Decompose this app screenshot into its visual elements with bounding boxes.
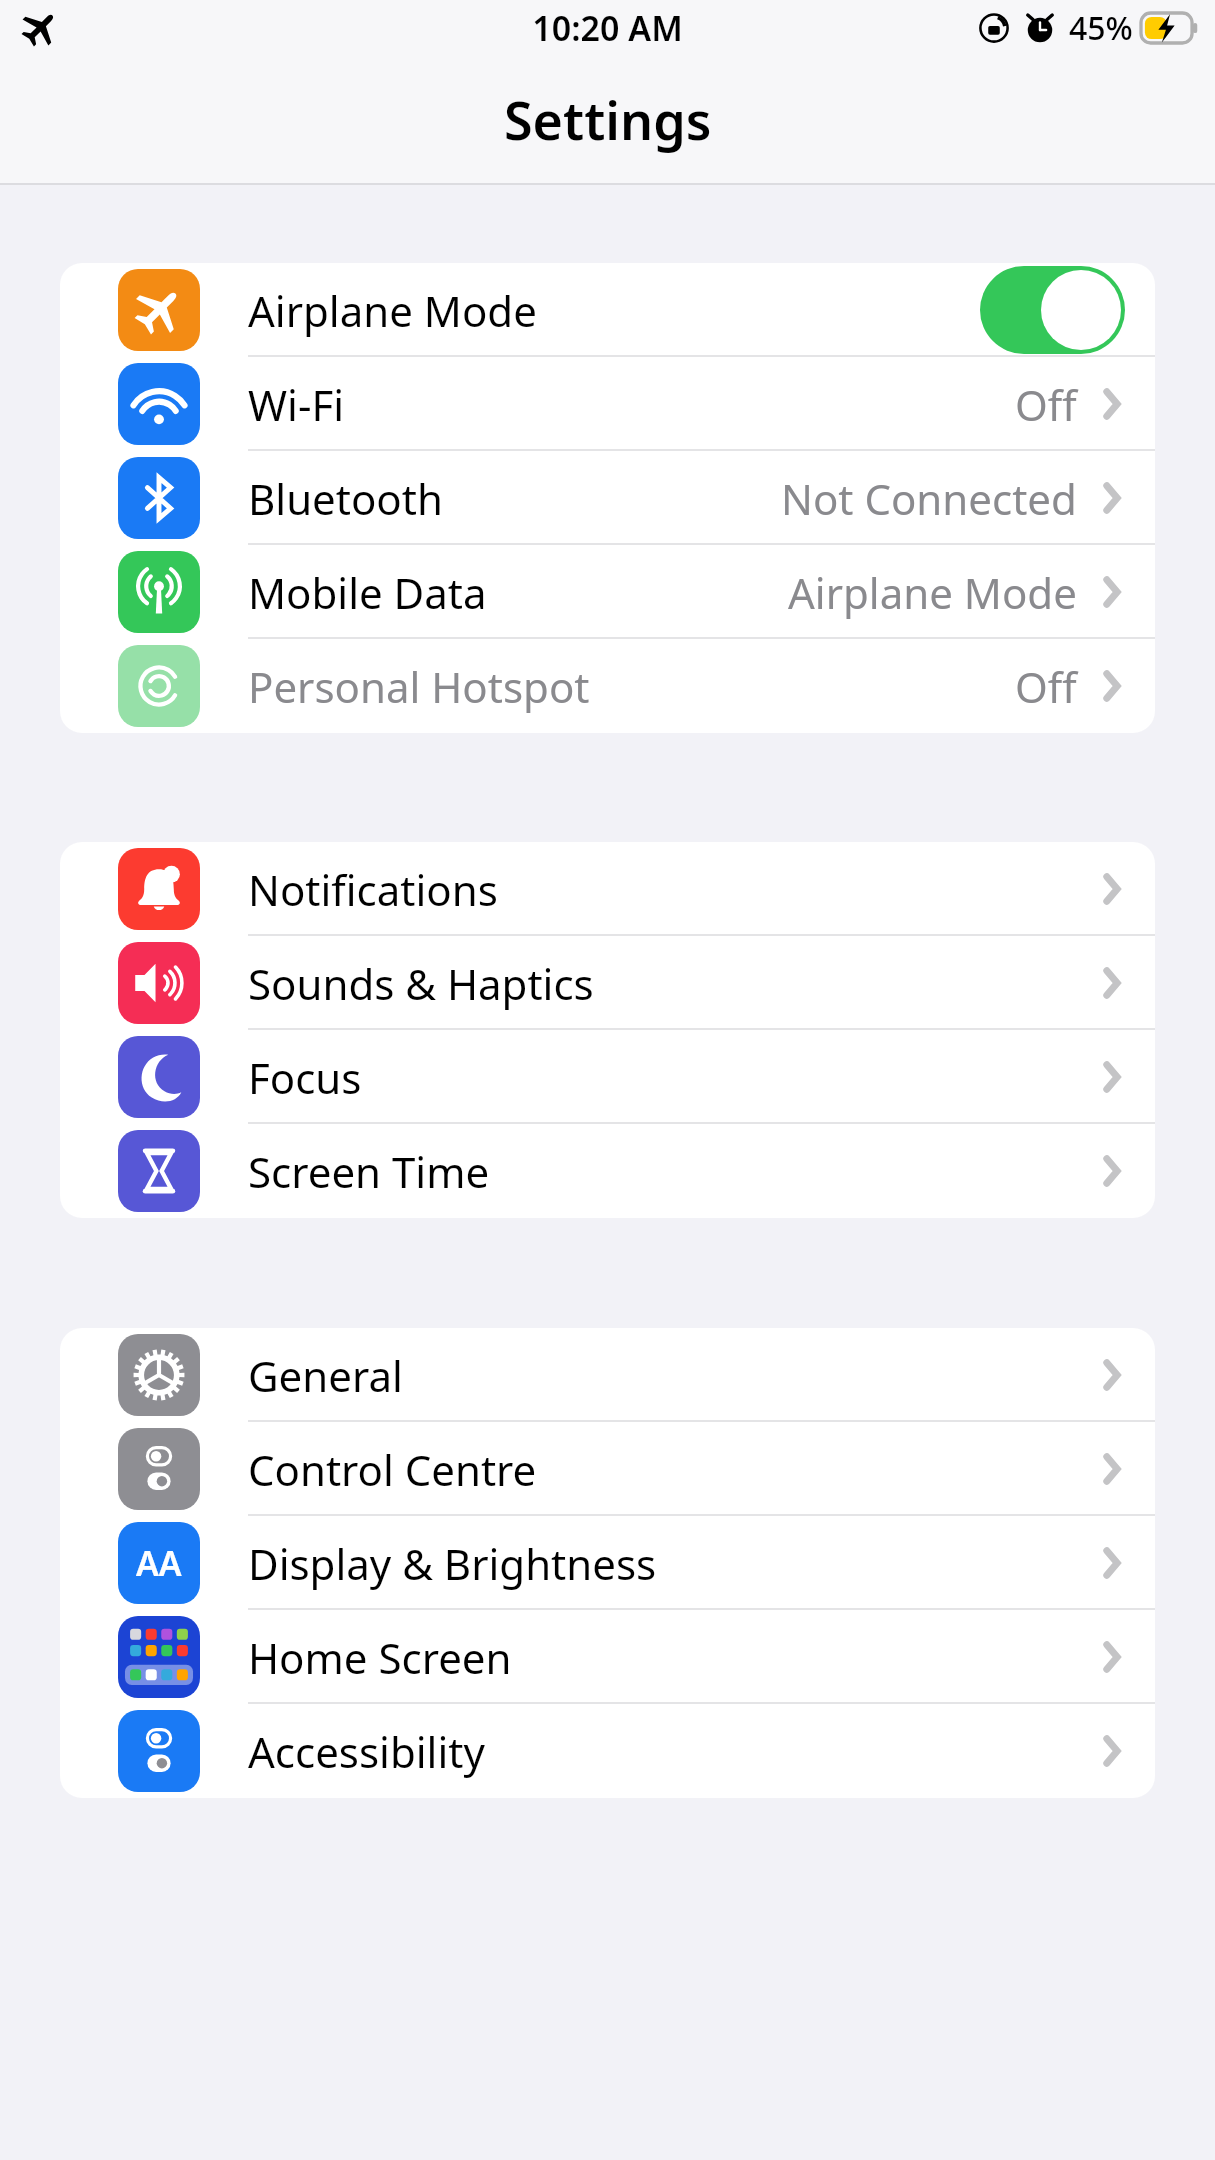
staticText: Control Centre [248, 1441, 537, 1498]
button[interactable]: Bluetooth [60, 451, 1155, 545]
button[interactable]: Accessibility [60, 1704, 1155, 1798]
button[interactable]: Notifications [60, 842, 1155, 936]
staticText: Display & Brightness [248, 1535, 657, 1592]
staticText: AA [136, 1540, 182, 1586]
staticText: Airplane Mode [248, 282, 537, 339]
button[interactable]: Mobile Data [60, 545, 1155, 639]
staticText: 45% [1069, 6, 1133, 50]
staticText: Not Connected [781, 470, 1077, 527]
staticText: Screen Time [248, 1143, 490, 1200]
staticText: Accessibility [248, 1723, 485, 1780]
button[interactable]: Control Centre [60, 1422, 1155, 1516]
button[interactable]: General [60, 1328, 1155, 1422]
other: Airplane Mode toggle, on [980, 266, 1125, 354]
staticText: 10:20 AM [532, 5, 683, 51]
staticText: Wi-Fi [248, 376, 345, 433]
staticText: Settings [504, 84, 712, 155]
staticText: Home Screen [248, 1629, 512, 1686]
staticText: Off [1015, 376, 1077, 433]
staticText: Notifications [248, 861, 498, 918]
staticText: Airplane Mode [788, 564, 1077, 621]
button[interactable]: AA [60, 1516, 1155, 1610]
staticText: Focus [248, 1049, 362, 1106]
staticText: General [248, 1347, 403, 1404]
button[interactable]: Personal Hotspot [60, 639, 1155, 733]
staticText: Personal Hotspot [248, 658, 590, 715]
button[interactable]: Airplane Mode [60, 263, 1155, 357]
staticText: Off [1015, 658, 1077, 715]
button[interactable]: Sounds & Haptics [60, 936, 1155, 1030]
button[interactable]: Focus [60, 1030, 1155, 1124]
staticText: Bluetooth [248, 470, 443, 527]
staticText: Sounds & Haptics [248, 955, 594, 1012]
staticText: Mobile Data [248, 564, 487, 621]
button[interactable]: Screen Time [60, 1124, 1155, 1218]
button[interactable]: Wi-Fi [60, 357, 1155, 451]
button[interactable]: Home Screen [60, 1610, 1155, 1704]
